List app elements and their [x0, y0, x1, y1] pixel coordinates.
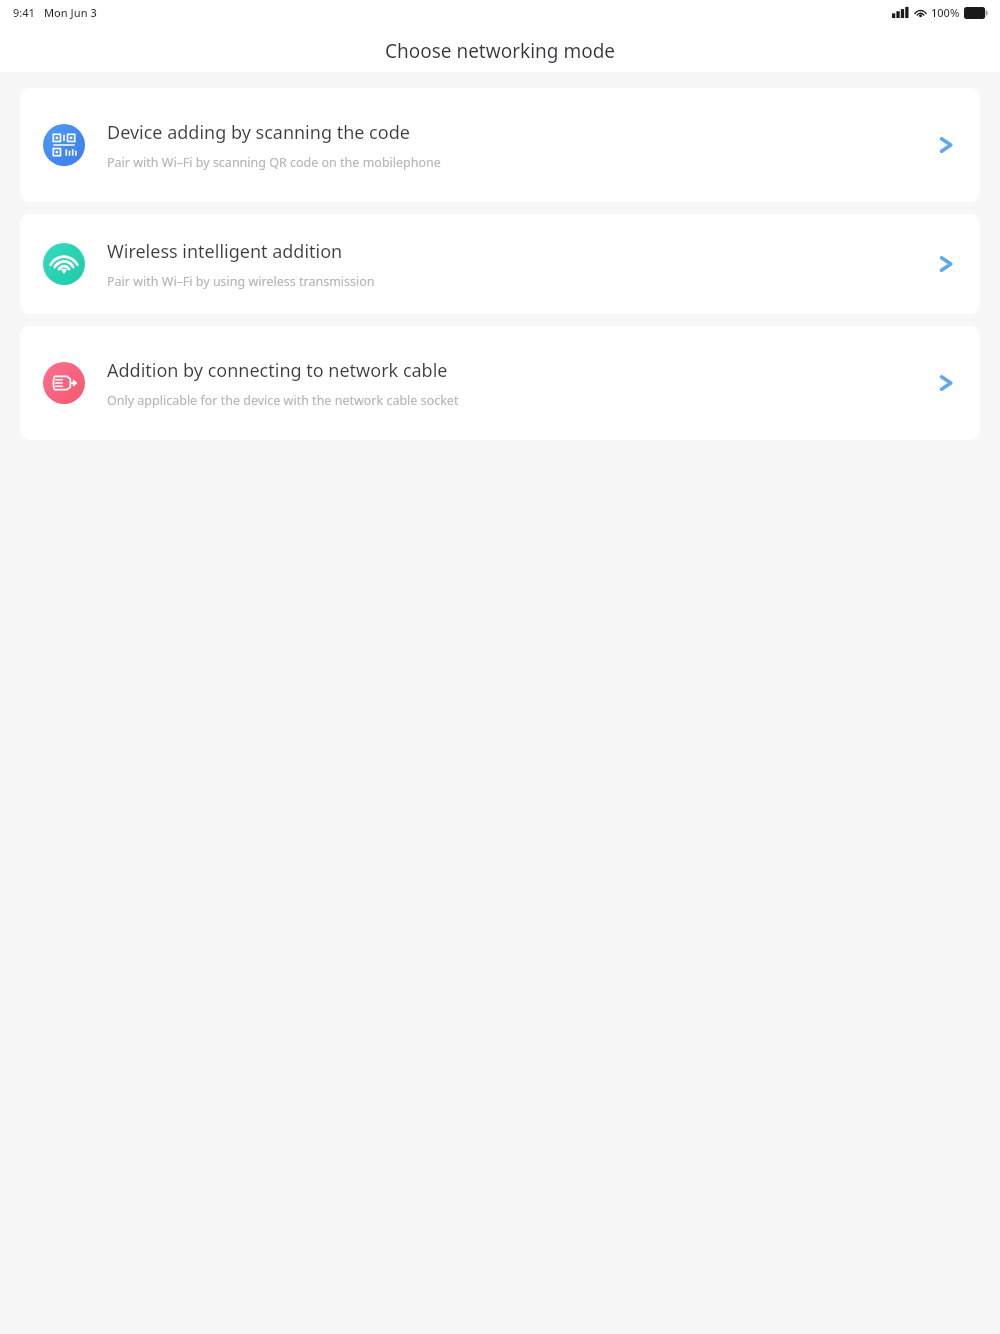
- other: Open: [938, 370, 954, 396]
- staticText: Wireless intelligent addition: [107, 239, 343, 264]
- staticText: Device adding by scanning the code: [107, 120, 410, 145]
- other: Network cable: [43, 362, 85, 404]
- staticText: Pair with Wi–Fi by scanning QR code on t…: [107, 154, 441, 171]
- staticText: Mon Jun 3: [44, 5, 97, 20]
- staticText: Only applicable for the device with the …: [107, 392, 459, 409]
- staticText: 9:41: [13, 5, 35, 20]
- button[interactable]: Network cable: [20, 326, 980, 440]
- button[interactable]: Scan QR code: [20, 88, 980, 202]
- other: Wireless: [43, 243, 85, 285]
- button[interactable]: Wireless: [20, 214, 980, 314]
- staticText: Addition by connecting to network cable: [107, 358, 448, 383]
- staticText: Choose networking mode: [0, 38, 1000, 64]
- other: Open: [938, 251, 954, 277]
- staticText: 100%: [931, 5, 960, 20]
- staticText: Pair with Wi–Fi by using wireless transm…: [107, 273, 375, 290]
- other: Scan QR code: [43, 124, 85, 166]
- other: Open: [938, 132, 954, 158]
